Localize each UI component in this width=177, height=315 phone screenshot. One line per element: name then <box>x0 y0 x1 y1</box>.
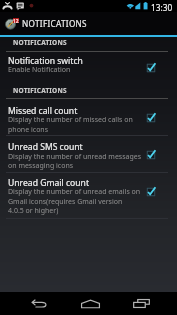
button[interactable]: Unread Gmail count <box>0 173 177 219</box>
staticText: 4.0.5 or higher) <box>8 206 59 216</box>
button[interactable]: Back <box>19 292 59 315</box>
button[interactable]: Notification switch <box>0 52 177 83</box>
button[interactable]: Recent apps <box>121 292 161 315</box>
staticText: phone icons <box>8 125 49 135</box>
staticText: 12 <box>13 18 19 23</box>
staticText: Display the number of unread messages <box>8 152 142 162</box>
staticText: Gmail icons(requires Gmail version <box>8 197 123 207</box>
button[interactable]: Toggle setting <box>145 186 156 197</box>
button[interactable]: Home <box>70 292 110 315</box>
staticText: 13:30 <box>151 2 173 13</box>
staticText: NOTIFICATIONS <box>13 38 67 47</box>
staticText: Display the number of unread emails on <box>8 187 141 197</box>
staticText: Missed call count <box>8 105 78 117</box>
staticText: Notification switch <box>8 55 83 67</box>
button[interactable]: Toggle setting <box>145 62 156 73</box>
staticText: Enable Notification <box>8 65 71 75</box>
staticText: Unread SMS count <box>8 141 83 153</box>
staticText: Display the number of missed calls on <box>8 115 133 125</box>
staticText: on messaging icons <box>8 161 74 171</box>
button[interactable]: 12 <box>0 12 177 35</box>
staticText: NOTIFICATIONS <box>13 86 67 95</box>
staticText: Unread Gmail count <box>8 177 89 189</box>
staticText: NOTIFICATIONS <box>22 18 87 29</box>
button[interactable]: Toggle setting <box>145 149 156 160</box>
button[interactable]: Unread SMS count <box>0 136 177 173</box>
button[interactable]: Missed call count <box>0 99 177 136</box>
button[interactable]: Toggle setting <box>145 112 156 123</box>
